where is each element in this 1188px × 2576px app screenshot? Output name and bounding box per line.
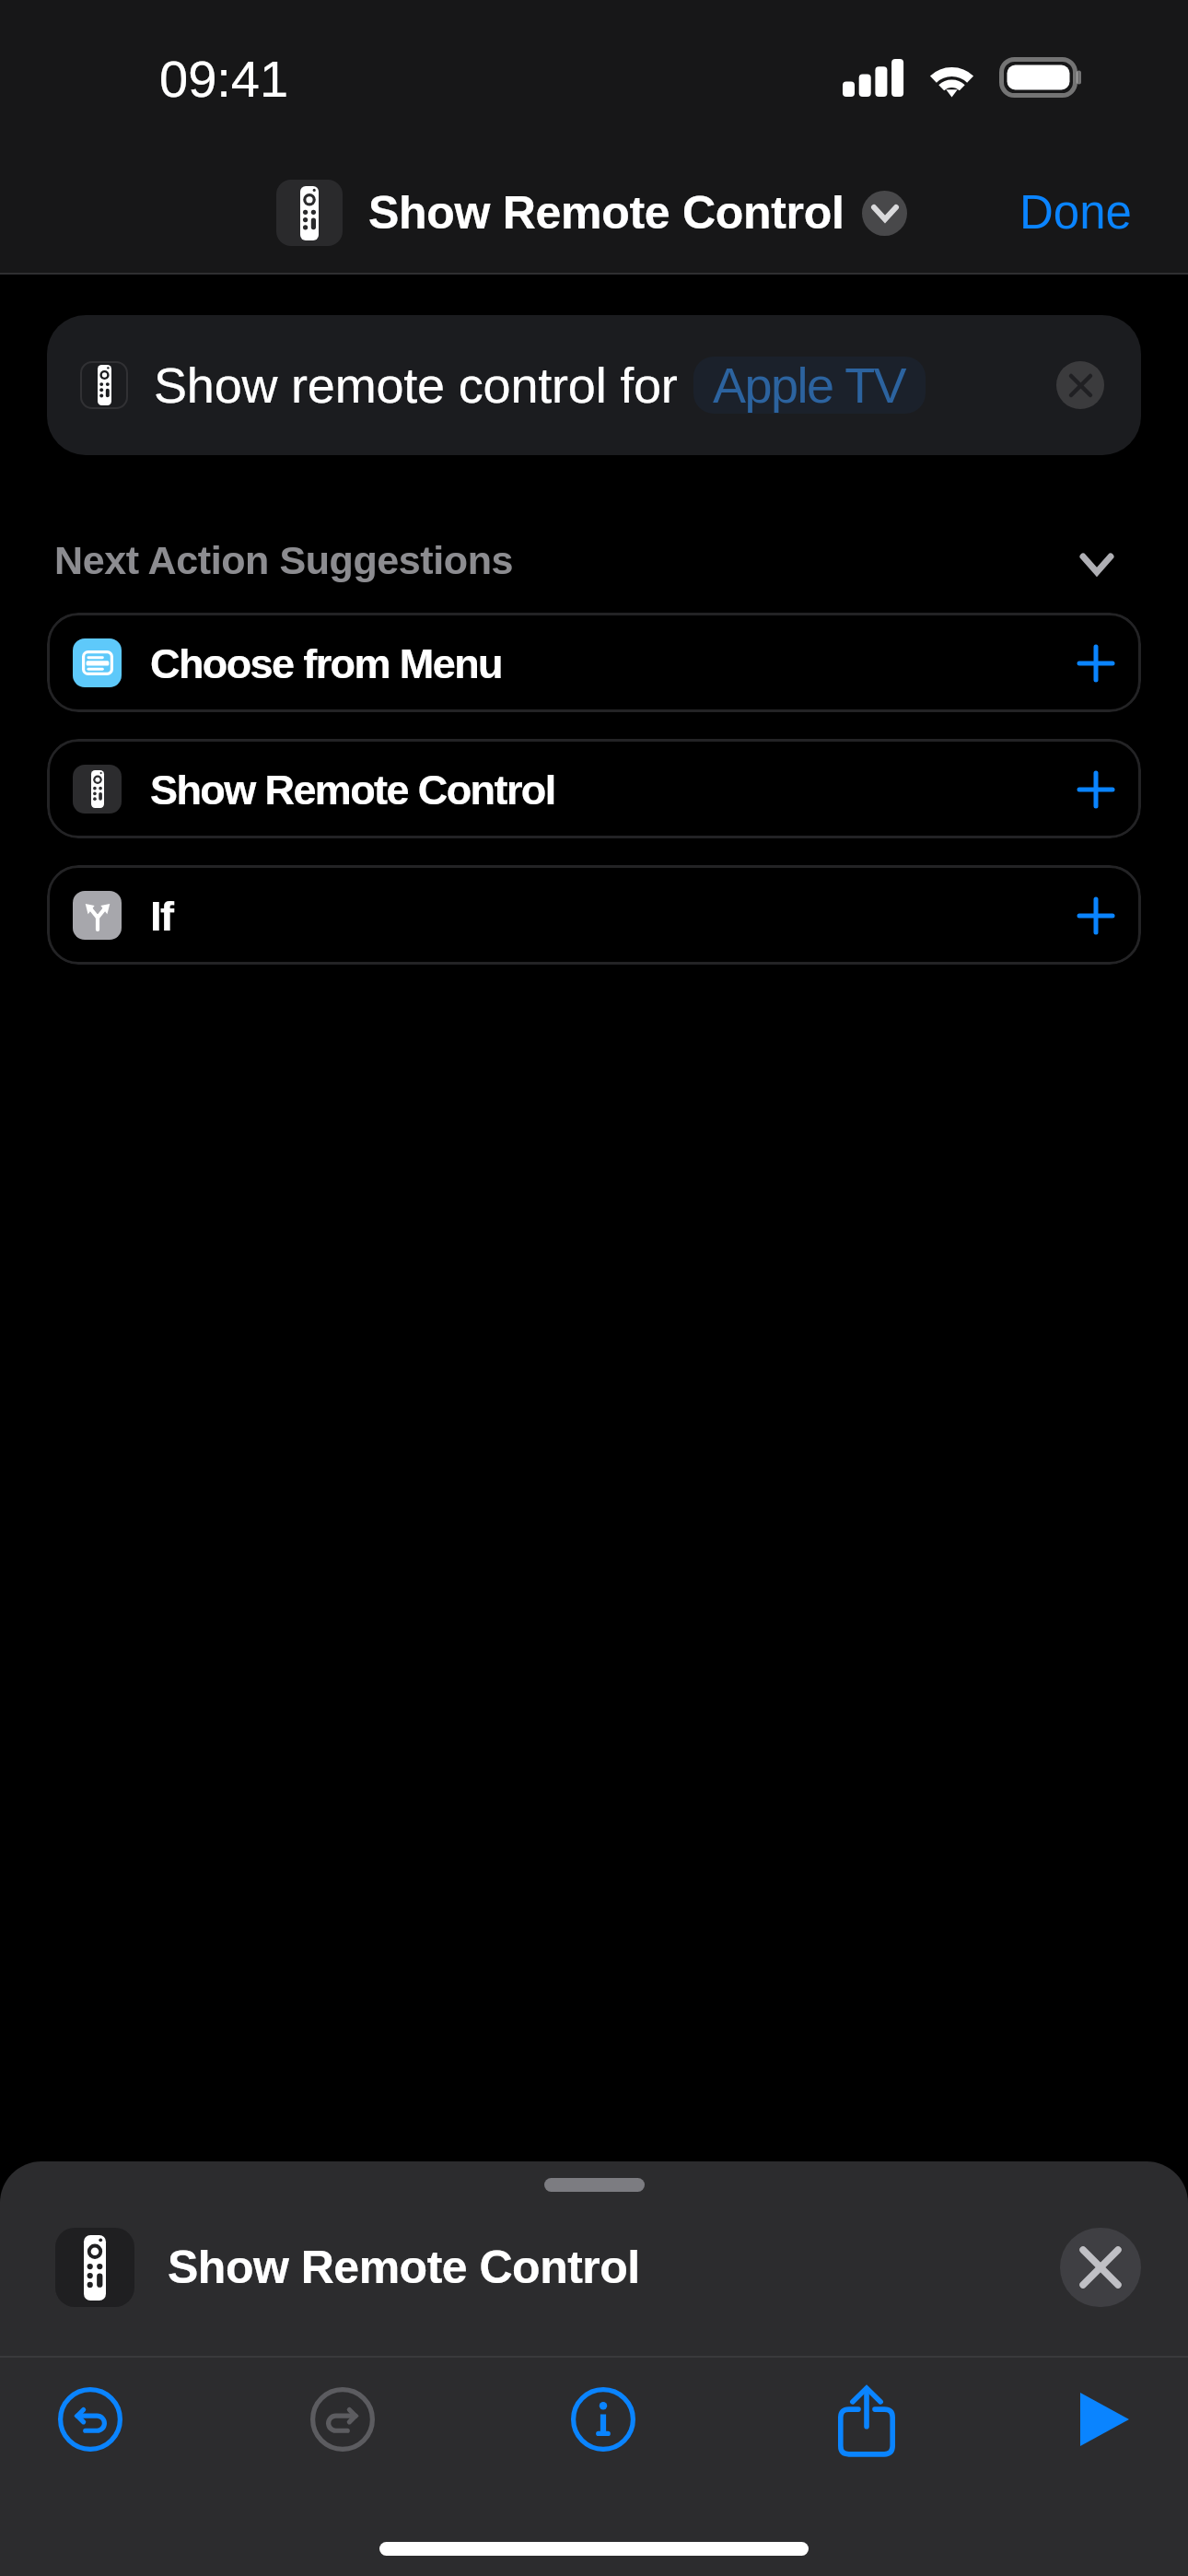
button[interactable]: Info — [548, 2364, 658, 2475]
button[interactable]: Done — [1010, 173, 1141, 252]
button[interactable]: Choose from Menu — [47, 613, 1141, 712]
staticText: Next Action Suggestions — [54, 538, 514, 582]
button[interactable]: Run — [1049, 2364, 1159, 2475]
button[interactable]: Close — [1060, 2228, 1141, 2307]
button[interactable]: Undo — [35, 2364, 146, 2475]
staticText: If — [150, 893, 173, 939]
button[interactable]: Show remote control for — [47, 315, 1141, 455]
button[interactable]: If — [47, 865, 1141, 965]
staticText: Done — [1019, 186, 1132, 239]
staticText: Show Remote Control — [368, 187, 844, 239]
staticText: Apple TV — [713, 357, 906, 413]
staticText: 09:41 — [159, 50, 289, 108]
staticText: Show Remote Control — [150, 767, 555, 813]
staticText: Show Remote Control — [168, 2242, 640, 2293]
staticText: Show remote control for — [154, 357, 678, 413]
button[interactable]: Remove action — [1056, 361, 1104, 409]
button[interactable]: Share — [811, 2364, 922, 2475]
button[interactable]: Next Action Suggestions — [54, 533, 1111, 587]
button[interactable]: Redo — [287, 2364, 398, 2475]
button[interactable]: Show Remote Control — [276, 180, 907, 246]
staticText: Choose from Menu — [150, 640, 502, 686]
button[interactable]: Show Remote Control — [47, 739, 1141, 838]
